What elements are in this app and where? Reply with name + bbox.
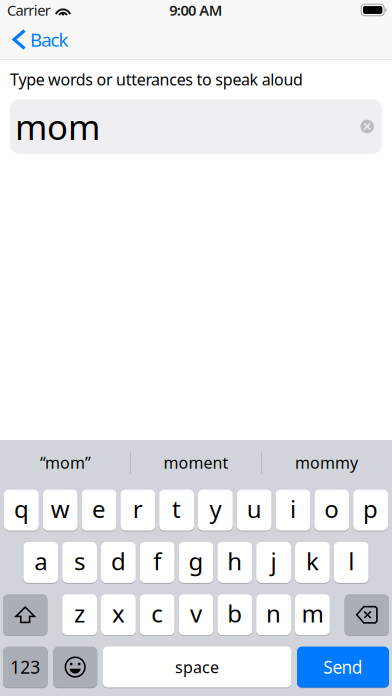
button[interactable]: Send [297, 646, 389, 688]
button[interactable]: h [217, 541, 252, 584]
button[interactable]: mommy [261, 440, 392, 485]
button[interactable]: g [179, 541, 213, 584]
staticText: Type words or utterances to speak aloud [10, 69, 303, 90]
button[interactable]: w [43, 489, 78, 531]
staticText: Back [30, 27, 69, 52]
staticText: space [175, 656, 219, 678]
staticText: v [190, 597, 202, 629]
button[interactable]: Back [0, 20, 79, 59]
staticText: p [363, 493, 378, 525]
staticText: a [34, 545, 47, 577]
staticText: moment [163, 452, 228, 473]
button[interactable]: u [237, 489, 272, 531]
staticText: Send [323, 655, 363, 678]
staticText: m [301, 597, 323, 629]
staticText: b [227, 597, 242, 629]
staticText: 9:00 AM [169, 0, 223, 20]
button[interactable]: r [120, 489, 155, 531]
button[interactable]: Clear text [360, 120, 374, 133]
button[interactable]: space [103, 646, 291, 688]
staticText: q [14, 493, 29, 525]
button[interactable]: t [159, 489, 194, 531]
staticText: t [172, 493, 181, 525]
staticText: s [74, 545, 85, 577]
staticText: w [51, 493, 70, 525]
staticText: u [247, 493, 262, 525]
staticText: 123 [10, 655, 40, 678]
staticText: f [153, 545, 161, 577]
staticText: mommy [295, 452, 358, 473]
button[interactable]: i [276, 489, 310, 531]
button[interactable]: s [62, 541, 97, 584]
staticText: r [133, 493, 143, 525]
button[interactable]: p [353, 489, 388, 531]
button[interactable]: k [295, 541, 330, 584]
staticText: e [92, 493, 106, 525]
button[interactable]: v [179, 594, 213, 636]
button[interactable]: b [217, 594, 252, 636]
staticText: h [227, 545, 242, 577]
button[interactable] [345, 594, 389, 636]
button[interactable]: n [256, 594, 291, 636]
button[interactable]: f [140, 541, 175, 584]
staticText: i [290, 493, 296, 525]
button[interactable] [3, 594, 47, 636]
staticText: d [111, 545, 126, 577]
button[interactable]: m [295, 594, 330, 636]
staticText: Carrier [7, 0, 51, 20]
staticText: “mom” [40, 452, 91, 473]
button[interactable]: 123 [3, 646, 48, 688]
button[interactable]: x [101, 594, 136, 636]
staticText: mom [15, 103, 100, 149]
button[interactable]: j [256, 541, 291, 584]
staticText: c [151, 597, 163, 629]
button[interactable] [53, 646, 97, 688]
button[interactable]: l [334, 541, 369, 584]
staticText: x [112, 597, 125, 629]
staticText: n [266, 597, 281, 629]
button[interactable]: e [82, 489, 116, 531]
button[interactable]: q [4, 489, 39, 531]
staticText: g [188, 545, 203, 577]
button[interactable]: y [198, 489, 233, 531]
button[interactable]: “mom” [0, 440, 131, 485]
staticText: y [209, 493, 221, 525]
button[interactable]: z [62, 594, 97, 636]
button[interactable]: a [23, 541, 58, 584]
staticText: o [324, 493, 339, 525]
staticText: l [348, 545, 354, 577]
button[interactable]: moment [131, 440, 261, 485]
button[interactable]: o [314, 489, 349, 531]
button[interactable]: d [101, 541, 136, 584]
button[interactable]: c [140, 594, 175, 636]
staticText: k [306, 545, 319, 577]
staticText: j [271, 545, 277, 577]
staticText: z [74, 597, 85, 629]
